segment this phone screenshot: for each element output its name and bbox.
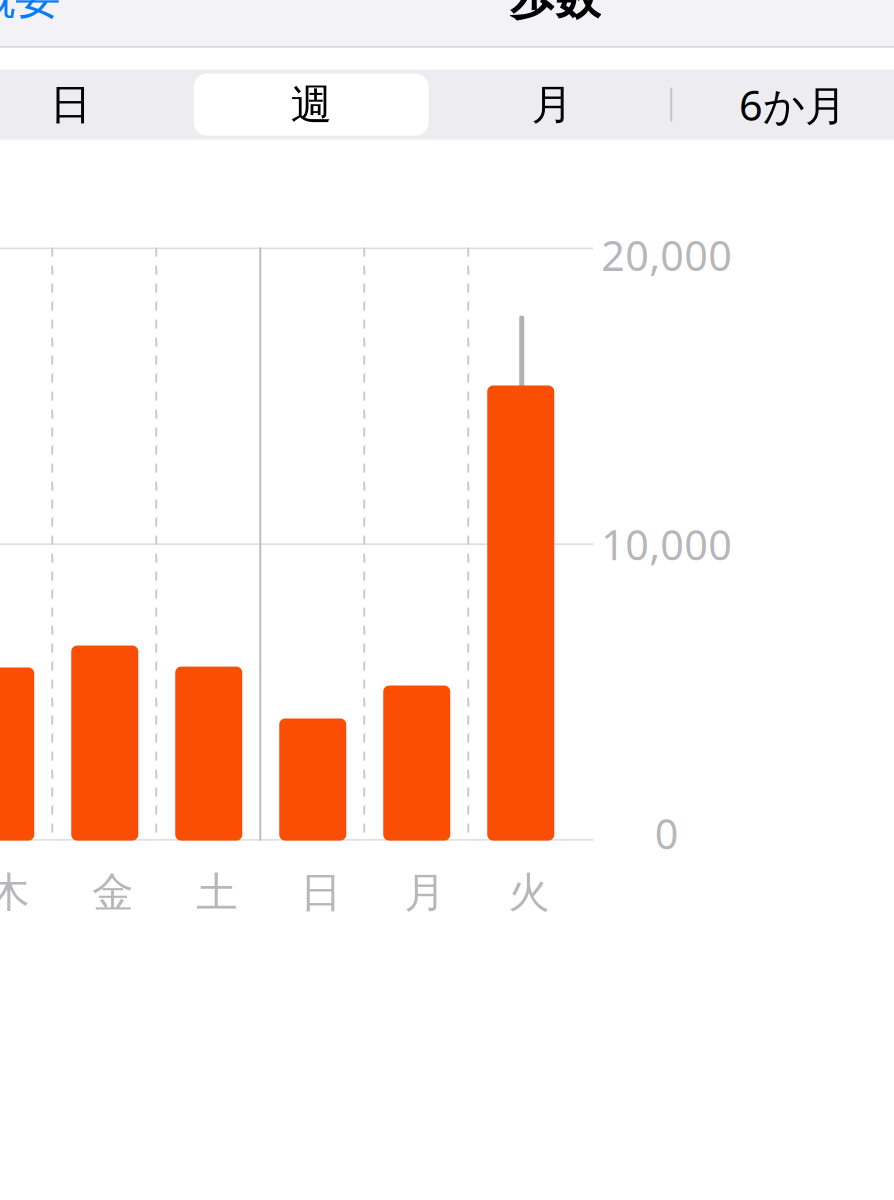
staticText: 月 [404, 867, 445, 918]
button[interactable]: 概要 [0, 0, 74, 38]
staticText: 概要 [0, 0, 60, 26]
button[interactable]: 週 [191, 70, 431, 140]
staticText: 0 [655, 806, 679, 861]
button[interactable]: 月 [431, 70, 672, 140]
staticText: 10,000 [601, 517, 732, 572]
staticText: 土 [196, 867, 237, 918]
staticText: 火 [508, 867, 549, 918]
staticText: 金 [92, 867, 133, 918]
staticText: 20,000 [601, 228, 732, 282]
staticText: 6か月 [739, 77, 846, 132]
button[interactable]: 6か月 [672, 70, 894, 140]
staticText: 木 [0, 867, 29, 918]
staticText: 日 [300, 867, 341, 918]
staticText: 月 [531, 79, 572, 130]
staticText: 歩数 [510, 0, 600, 26]
staticText: 週 [291, 79, 332, 130]
button[interactable]: 日 [0, 70, 191, 140]
staticText: 日 [50, 79, 91, 130]
